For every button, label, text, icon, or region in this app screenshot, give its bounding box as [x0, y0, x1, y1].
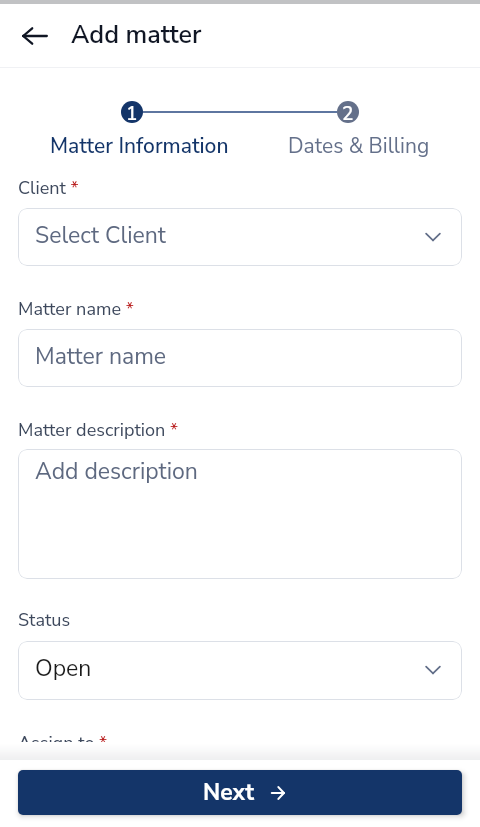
button[interactable]: Select Client — [18, 208, 462, 266]
staticText: Status — [18, 608, 71, 633]
staticText: Matter name — [35, 341, 167, 372]
staticText: Matter Information — [50, 132, 229, 161]
staticText: Dates & Billing — [288, 132, 430, 161]
staticText: Matter name * — [18, 297, 134, 322]
button[interactable]: Back — [13, 14, 57, 58]
staticText: Add matter — [71, 18, 202, 52]
staticText: 1 — [126, 101, 138, 123]
button[interactable]: 2 — [337, 101, 359, 123]
staticText: Next — [203, 777, 254, 808]
button[interactable]: Open — [18, 641, 462, 700]
staticText: Select Client — [35, 220, 425, 251]
staticText: Open — [35, 653, 425, 684]
button[interactable]: 1 — [121, 101, 143, 123]
staticText: 2 — [342, 101, 354, 123]
staticText: Add description — [35, 456, 198, 487]
staticText: Assign to * — [18, 731, 108, 742]
staticText: Matter description * — [18, 418, 179, 443]
staticText: Client * — [18, 176, 79, 201]
button[interactable]: Next — [18, 770, 462, 815]
button[interactable]: Matter name — [18, 329, 462, 387]
button[interactable]: Add description — [18, 449, 462, 579]
